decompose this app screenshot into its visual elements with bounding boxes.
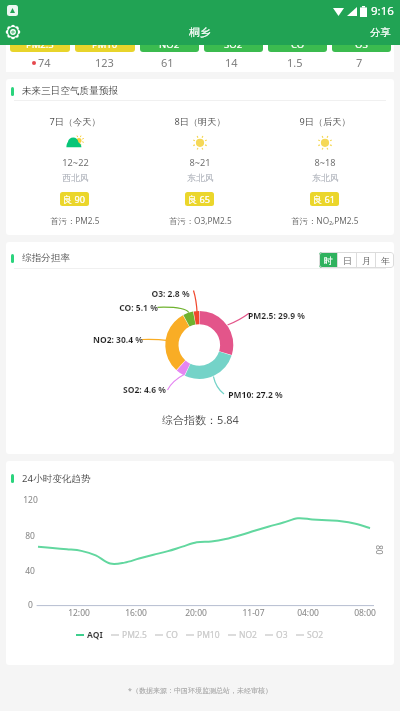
button[interactable]: O3: [332, 36, 391, 52]
staticText: 8~21: [189, 156, 211, 169]
staticText: O3: 2.8 %: [151, 288, 190, 300]
staticText: 首污：NO₂,PM2.5: [291, 215, 359, 226]
staticText: PM2.5: [122, 629, 147, 641]
staticText: 年: [381, 255, 390, 266]
staticText: 首污：O3,PM2.5: [169, 215, 232, 226]
button[interactable]: 日: [338, 252, 356, 268]
staticText: 12:00: [68, 607, 90, 619]
button[interactable]: 时: [319, 252, 337, 268]
button[interactable]: NO2: [228, 629, 257, 641]
staticText: 7日（今天）: [49, 115, 101, 128]
button[interactable]: 设置: [4, 23, 22, 41]
staticText: O3: [276, 629, 288, 641]
staticText: CO: [291, 38, 305, 51]
staticText: AQI: [87, 629, 103, 641]
staticText: 08:00: [354, 607, 376, 619]
staticText: PM2.5: 29.9 %: [248, 310, 305, 322]
button[interactable]: CO: [155, 629, 178, 641]
staticText: 西北风: [62, 173, 89, 184]
staticText: 首污：PM2.5: [50, 215, 100, 226]
staticText: NO2: 30.4 %: [93, 334, 143, 346]
staticText: PM10: [92, 38, 118, 51]
button[interactable]: SO2: [204, 36, 263, 52]
staticText: 8~18: [314, 156, 336, 169]
staticText: *（数据来源：中国环境监测总站，未经审核）: [128, 686, 272, 696]
staticText: 7: [356, 55, 363, 70]
staticText: 分享: [370, 26, 391, 39]
staticText: 东北风: [187, 173, 214, 184]
staticText: 123: [95, 55, 114, 70]
staticText: 月: [362, 255, 371, 266]
staticText: 东北风: [312, 173, 339, 184]
staticText: 80: [373, 545, 385, 555]
staticText: 良 90: [63, 193, 86, 206]
staticText: 9日（后天）: [299, 115, 351, 128]
staticText: 80: [25, 530, 35, 542]
staticText: O3: [355, 38, 368, 51]
button[interactable]: SO2: [296, 629, 324, 641]
staticText: 日: [343, 255, 352, 266]
staticText: 9:16: [371, 3, 394, 19]
staticText: SO2: [224, 38, 243, 51]
staticText: NO2: [159, 38, 180, 51]
staticText: 桐乡: [189, 26, 211, 40]
staticText: 40: [25, 565, 35, 577]
staticText: 良 61: [313, 193, 336, 206]
staticText: 综合指数：5.84: [162, 412, 239, 427]
button[interactable]: AQI: [76, 629, 103, 641]
staticText: 8日（明天）: [174, 115, 226, 128]
button[interactable]: 年: [376, 252, 394, 268]
staticText: 24小时变化趋势: [22, 472, 91, 485]
staticText: 0: [28, 599, 33, 611]
staticText: 综指分担率: [22, 252, 70, 264]
staticText: 20:00: [185, 607, 207, 619]
staticText: SO2: 4.6 %: [123, 384, 166, 396]
button[interactable]: 分享: [366, 26, 394, 39]
staticText: 61: [161, 55, 174, 70]
staticText: PM2.5: [26, 38, 54, 51]
staticText: CO: [166, 629, 178, 641]
button[interactable]: 月: [357, 252, 375, 268]
staticText: CO: 5.1 %: [119, 302, 158, 314]
button[interactable]: PM2.5: [10, 36, 70, 52]
staticText: PM10: [197, 629, 220, 641]
staticText: 良 65: [188, 193, 211, 206]
staticText: PM10: 27.2 %: [228, 389, 283, 401]
staticText: 11-07: [242, 607, 265, 619]
button[interactable]: CO: [268, 36, 327, 52]
button[interactable]: PM10: [186, 629, 220, 641]
staticText: 12~22: [62, 156, 89, 169]
staticText: 74: [38, 55, 51, 70]
staticText: 16:00: [125, 607, 147, 619]
button[interactable]: PM10: [75, 36, 135, 52]
button[interactable]: O3: [265, 629, 288, 641]
button[interactable]: NO2: [140, 36, 199, 52]
button[interactable]: PM2.5: [111, 629, 147, 641]
staticText: 时: [324, 255, 333, 266]
staticText: 1.5: [287, 55, 303, 70]
staticText: SO2: [307, 629, 324, 641]
staticText: 未来三日空气质量预报: [22, 85, 118, 97]
staticText: NO2: [239, 629, 257, 641]
staticText: 120: [23, 494, 38, 506]
staticText: 14: [225, 55, 238, 70]
staticText: 04:00: [297, 607, 319, 619]
